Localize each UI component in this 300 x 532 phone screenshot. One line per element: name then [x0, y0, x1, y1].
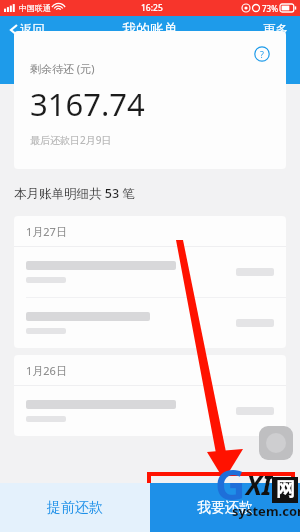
staticText: G [215, 455, 246, 512]
staticText: 16:25 [141, 2, 163, 14]
staticText: 未入账 [231, 48, 269, 64]
button[interactable]: 未入账 [200, 44, 300, 74]
button[interactable]: 提前还款 [0, 483, 150, 532]
staticText: 我的账单 [122, 21, 178, 39]
staticText: 最后还款日2月9日 [30, 133, 112, 147]
staticText: 中国联通 [19, 3, 51, 13]
staticText: 提前还款 [47, 499, 103, 517]
button[interactable] [14, 247, 286, 297]
staticText: 剩余待还 (元) [30, 61, 95, 76]
button[interactable]: Assistive touch [259, 426, 293, 460]
staticText: 73% [262, 3, 278, 14]
staticText: XI [246, 467, 272, 502]
button[interactable]: Help [254, 46, 270, 62]
staticText: 本月账单明细共 53 笔 [14, 185, 135, 202]
button[interactable]: 1月应还 [0, 44, 100, 74]
button[interactable] [14, 298, 286, 348]
button[interactable]: 更多 [263, 22, 288, 38]
staticText: 网 [276, 478, 295, 502]
button[interactable]: 返回 [10, 22, 45, 38]
staticText: 1月应还 [28, 48, 73, 65]
staticText: 1月26日 [26, 363, 67, 378]
button[interactable]: 我要还款 [150, 483, 300, 532]
staticText: system.com [232, 502, 300, 520]
staticText: 3167.74 [30, 83, 145, 125]
staticText: ? [260, 48, 264, 60]
button[interactable]: 剩余待还 (元) [14, 31, 286, 169]
button[interactable] [14, 386, 286, 436]
staticText: 1月27日 [26, 224, 67, 239]
staticText: 返回 [20, 22, 45, 38]
staticText: 我要还款 [197, 499, 253, 517]
